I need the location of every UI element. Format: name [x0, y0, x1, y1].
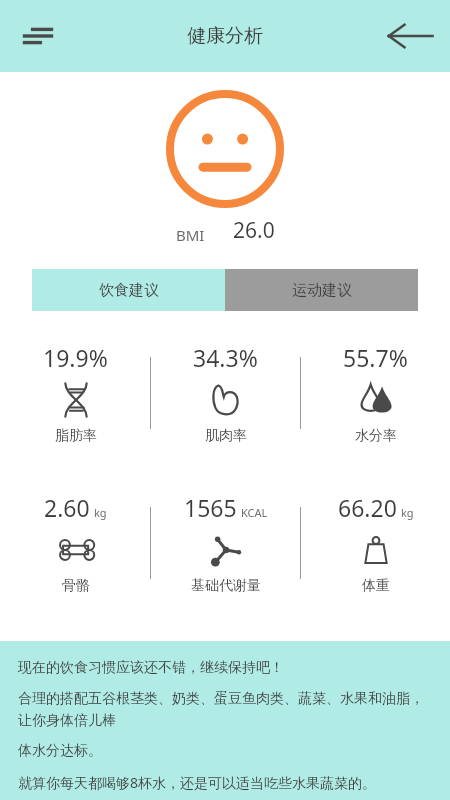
staticText: 55.7% — [343, 342, 408, 373]
button[interactable]: 饮食建议 — [32, 269, 225, 311]
staticText: kg — [94, 505, 107, 520]
staticText: 19.9% — [43, 342, 108, 373]
button[interactable]: 34.3% — [151, 329, 300, 457]
button[interactable]: 2.60 — [0, 479, 150, 607]
staticText: 脂肪率 — [55, 427, 97, 445]
staticText: KCAL — [241, 505, 268, 520]
staticText: kg — [401, 505, 414, 520]
staticText: 合理的搭配五谷根茎类、奶类、蛋豆鱼肉类、蔬菜、水果和油脂，让你身体倍儿棒 — [18, 690, 432, 729]
button[interactable]: Back — [380, 6, 440, 66]
button[interactable]: Menu — [12, 10, 64, 62]
staticText: BMI — [176, 225, 205, 245]
staticText: 2.60 — [44, 492, 90, 523]
staticText: 就算你每天都喝够8杯水，还是可以适当吃些水果蔬菜的。 — [18, 773, 377, 792]
button[interactable]: 运动建议 — [225, 269, 418, 311]
button[interactable]: 55.7% — [301, 329, 450, 457]
staticText: 34.3% — [193, 342, 258, 373]
staticText: 水分率 — [355, 427, 397, 445]
staticText: 体水分达标。 — [18, 742, 102, 760]
staticText: 健康分析 — [187, 24, 263, 48]
staticText: 基础代谢量 — [191, 577, 261, 595]
button[interactable]: 1565 — [151, 479, 300, 607]
staticText: 运动建议 — [292, 281, 352, 300]
staticText: 骨骼 — [62, 577, 90, 595]
staticText: 体重 — [362, 577, 390, 595]
button[interactable]: 19.9% — [0, 329, 150, 457]
staticText: 1565 — [184, 492, 237, 523]
button[interactable]: 66.20 — [301, 479, 450, 607]
staticText: 肌肉率 — [205, 427, 247, 445]
staticText: 饮食建议 — [99, 281, 159, 300]
staticText: 现在的饮食习惯应该还不错，继续保持吧！ — [18, 659, 284, 677]
staticText: 26.0 — [233, 216, 275, 245]
staticText: 66.20 — [338, 492, 397, 523]
